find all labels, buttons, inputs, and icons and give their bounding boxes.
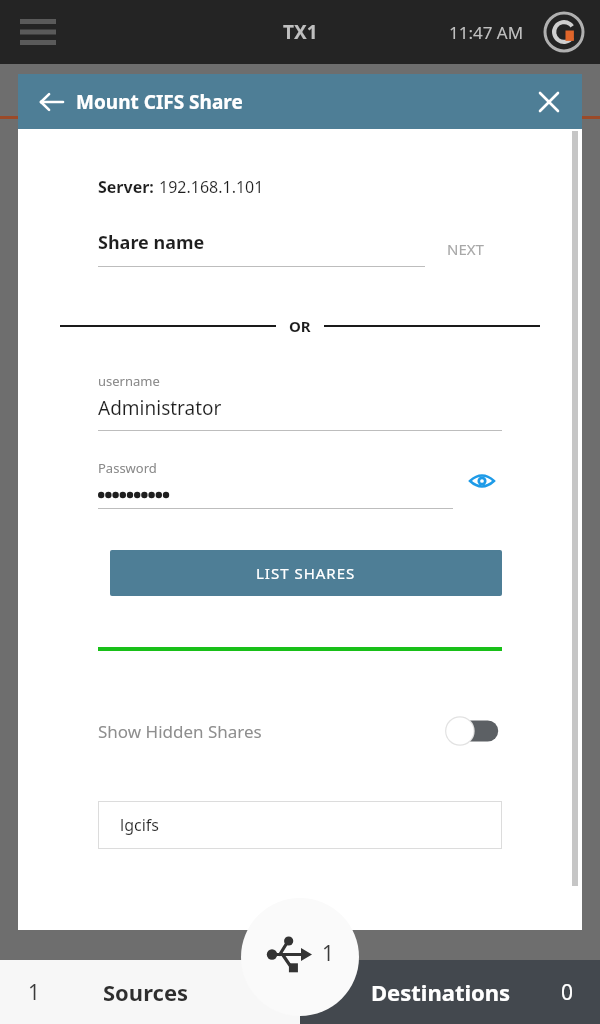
button[interactable]: Close [526, 79, 572, 125]
staticText: Destinations [371, 977, 511, 1007]
button[interactable]: NEXT [443, 235, 488, 263]
staticText: Sources [103, 977, 189, 1007]
button[interactable]: lgcifs [98, 801, 502, 849]
button[interactable]: Show Hidden Shares [98, 714, 502, 748]
staticText: NEXT [447, 239, 484, 259]
button[interactable]: LIST SHARES [110, 550, 502, 596]
button[interactable]: Show password [462, 461, 502, 501]
staticText: lgcifs [120, 814, 159, 836]
staticText: Server: [98, 176, 159, 198]
staticText: TX1 [283, 19, 318, 45]
button[interactable]: 1 [0, 960, 300, 1024]
staticText: Administrator [98, 395, 222, 421]
staticText: Mount CIFS Share [76, 89, 243, 115]
staticText: 1 [322, 939, 335, 968]
button[interactable]: Account [540, 8, 588, 56]
staticText: Password [98, 459, 157, 477]
staticText: 192.168.1.101 [159, 176, 264, 198]
button[interactable]: Share name [98, 230, 425, 267]
button[interactable]: Destinations [300, 960, 600, 1024]
button[interactable]: Back [28, 79, 74, 125]
staticText: username [98, 372, 160, 390]
button[interactable]: USB transfers: 1 [241, 898, 359, 1016]
staticText: 0 [561, 978, 574, 1007]
button[interactable]: Password [98, 459, 453, 509]
button[interactable]: Menu [14, 8, 62, 56]
staticText: Show Hidden Shares [98, 720, 262, 743]
staticText: LIST SHARES [256, 563, 356, 583]
staticText: OR [289, 316, 311, 336]
staticText: 1 [28, 978, 41, 1007]
button[interactable]: username [98, 372, 502, 431]
staticText: 11:47 AM [449, 21, 524, 44]
staticText: Share name [98, 230, 205, 255]
